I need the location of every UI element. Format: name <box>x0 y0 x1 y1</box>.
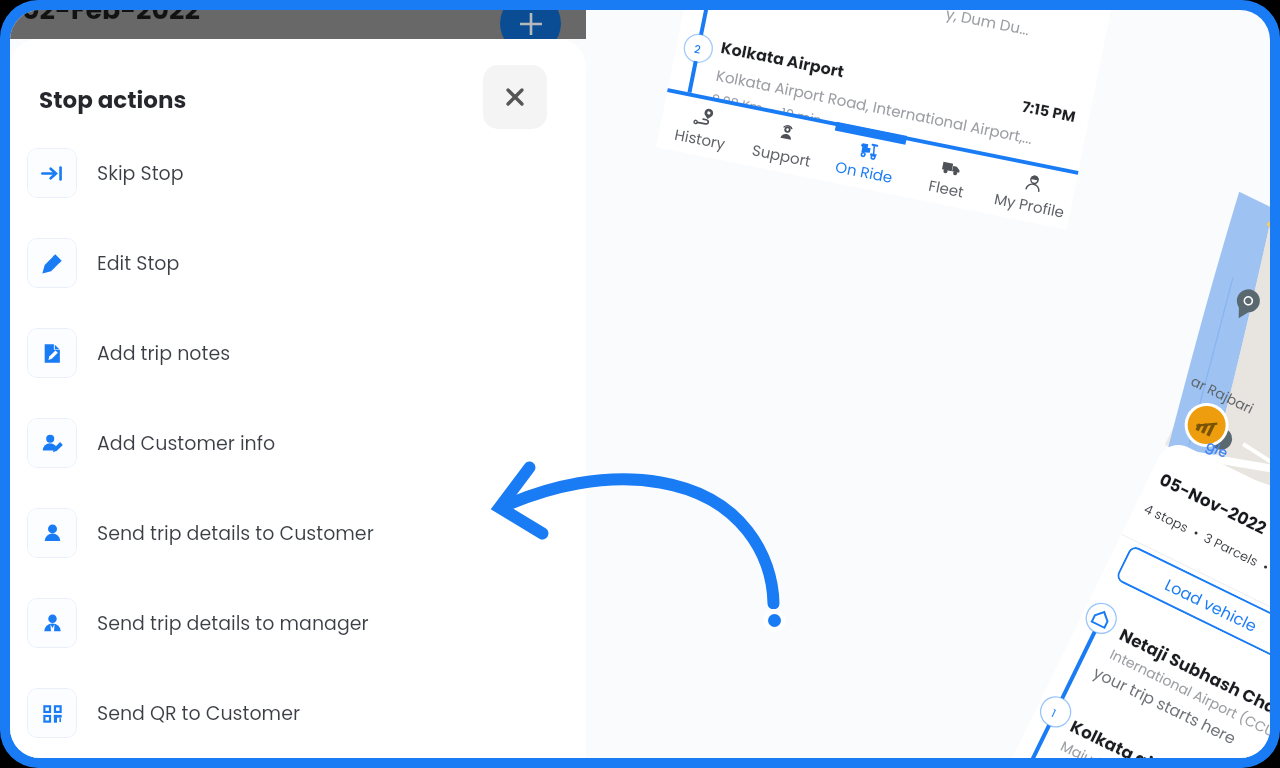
staticText: Load vehicle <box>1161 573 1261 637</box>
staticText: Skip Stop <box>97 160 184 187</box>
staticText: Kolkata airport <box>1066 714 1196 758</box>
button[interactable]: Edit Stop <box>10 218 586 308</box>
staticText: Send trip details to Customer <box>97 520 374 547</box>
button[interactable]: My Profile <box>984 157 1078 230</box>
button[interactable]: Add trip notes <box>10 308 586 398</box>
staticText: Kolkata Airport Road, International Airp… <box>714 65 1035 149</box>
staticText: Fleet <box>927 175 966 203</box>
button[interactable]: On Ride <box>820 124 913 197</box>
button[interactable]: Add trip <box>500 10 561 54</box>
button[interactable]: Fleet <box>902 141 996 213</box>
button[interactable]: History <box>656 91 749 163</box>
staticText: My Profile <box>992 188 1066 223</box>
staticText: Support <box>750 139 813 172</box>
staticText: Kolkata Airport <box>719 36 847 83</box>
staticText: 7:15 PM <box>1020 96 1077 127</box>
button[interactable]: Support <box>737 107 831 180</box>
staticText: Add trip notes <box>97 340 231 367</box>
staticText: 2 <box>693 41 703 57</box>
staticText: 1 <box>1049 705 1059 720</box>
button[interactable]: Send QR to Customer <box>10 668 586 758</box>
staticText: 4 stops • 3 Parcels • 1... <box>1141 499 1270 584</box>
button[interactable]: Skip Stop <box>10 128 586 218</box>
staticText: Edit Stop <box>97 250 180 277</box>
button[interactable]: Send trip details to manager <box>10 578 586 668</box>
staticText: 05-Nov-2022 <box>1155 467 1270 540</box>
staticText: Send QR to Customer <box>97 700 301 727</box>
staticText: Majurhat, Kolkata... <box>1057 736 1184 758</box>
staticText: gle <box>1203 435 1231 463</box>
staticText: Stop actions <box>39 84 187 116</box>
staticText: Add Customer info <box>97 430 276 457</box>
button[interactable]: Add Customer info <box>10 398 586 488</box>
staticText: ar Rajbari <box>1187 371 1257 419</box>
staticText: Send trip details to manager <box>97 610 369 637</box>
button[interactable]: Load vehicle <box>1115 544 1270 665</box>
staticText: Netaji Subhash Chandra... <box>1115 623 1270 745</box>
staticText: International Airport (CCU), Netaji... <box>1107 644 1270 758</box>
staticText: 8.08 Km • 10 min <box>710 89 823 129</box>
button[interactable]: Close <box>483 65 547 129</box>
staticText: 02-Feb-2022 <box>22 10 200 29</box>
staticText: History <box>673 124 728 155</box>
staticText: your trip starts here <box>1090 661 1240 749</box>
staticText: y, Dum Du... <box>944 10 1032 40</box>
button[interactable]: Send trip details to Customer <box>10 488 586 578</box>
staticText: On Ride <box>834 156 895 188</box>
